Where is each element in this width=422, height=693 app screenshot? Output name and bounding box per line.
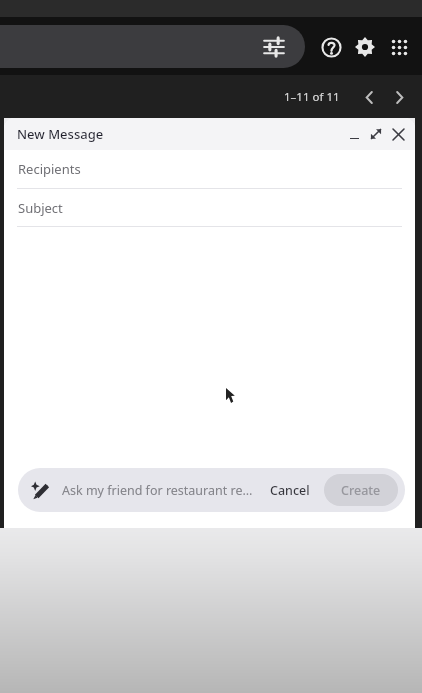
button[interactable]: Help me write	[31, 481, 50, 500]
staticText: New Message	[17, 125, 104, 143]
button[interactable]: Minimize	[343, 123, 365, 145]
button[interactable]: Create	[324, 474, 398, 506]
button[interactable]: Subject	[4, 189, 415, 226]
staticText: Cancel	[270, 482, 310, 499]
staticText: Recipients	[18, 160, 81, 178]
staticText: Create	[341, 482, 381, 499]
staticText: Subject	[18, 199, 63, 217]
button[interactable]: Search options	[0, 25, 305, 68]
button[interactable]: Cancel	[262, 476, 318, 505]
button[interactable]: Recipients	[4, 150, 415, 188]
button[interactable]: Older	[384, 82, 414, 112]
button[interactable]: Ask my friend for restaurant re…	[62, 482, 256, 499]
button[interactable]: Full screen	[365, 123, 387, 145]
button[interactable]: Search options	[261, 34, 287, 60]
staticText: 1–11 of 11	[284, 89, 340, 105]
button[interactable]: Settings	[348, 30, 382, 64]
button[interactable]: Help	[314, 30, 348, 64]
button[interactable]: Google apps	[382, 30, 416, 64]
button[interactable]: Close	[387, 123, 409, 145]
button[interactable]: Newer	[354, 82, 384, 112]
button[interactable]: New Message	[4, 118, 415, 150]
